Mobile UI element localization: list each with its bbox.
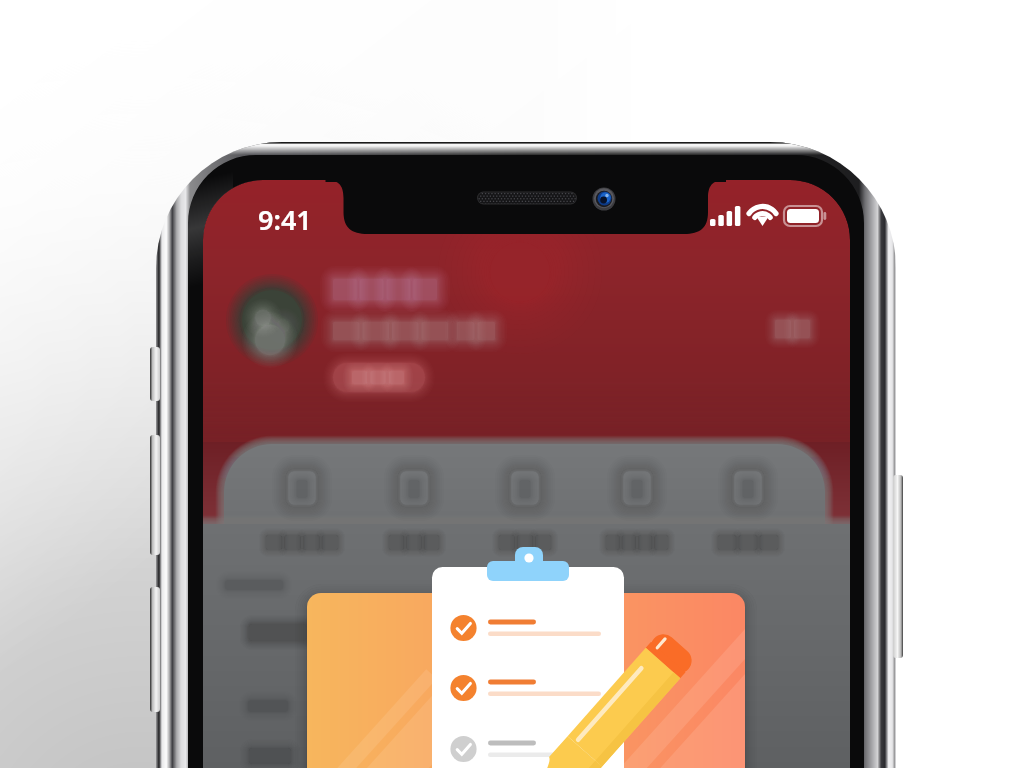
button[interactable]: Phone mockup with task list illustration <box>0 0 1024 768</box>
